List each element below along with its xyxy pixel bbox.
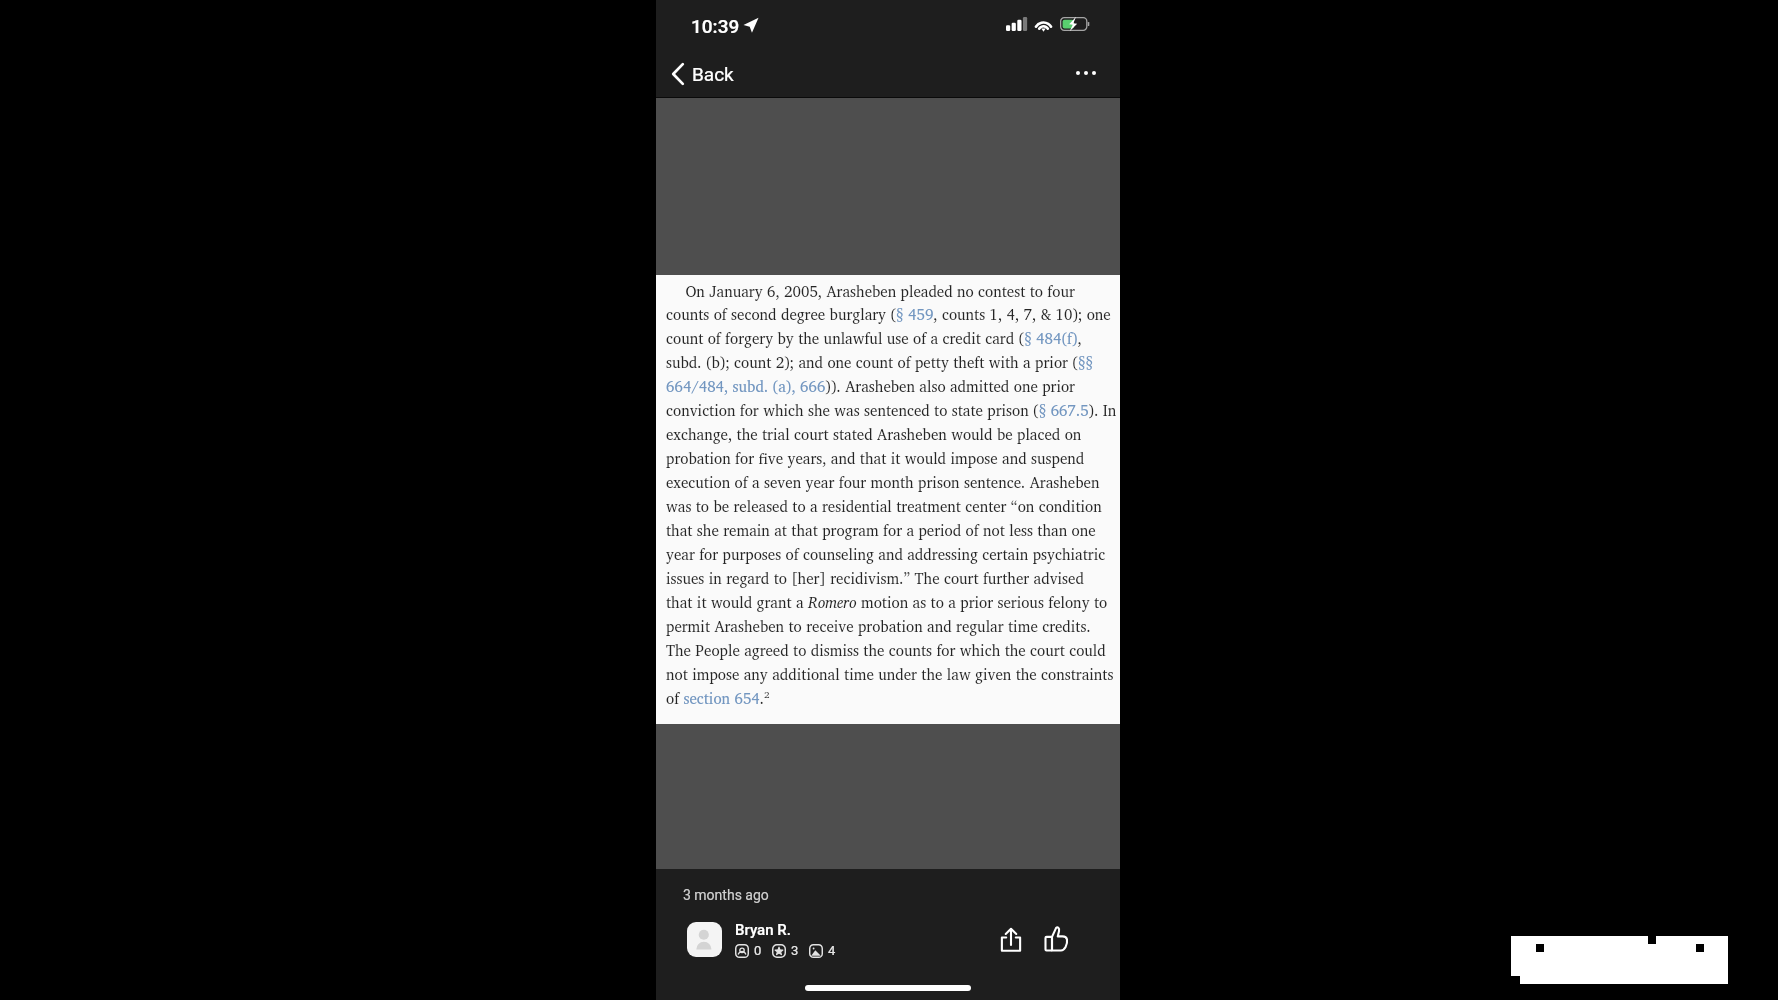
- button[interactable]: More options: [1058, 59, 1120, 87]
- staticText: 10:39: [691, 15, 740, 37]
- staticText: On January 6, 2005, Arasheben pleaded no…: [666, 279, 1117, 711]
- button[interactable]: Share: [990, 918, 1032, 961]
- staticText: Back: [692, 63, 734, 85]
- button[interactable]: Back: [656, 57, 744, 91]
- button[interactable]: Like: [1035, 917, 1078, 961]
- staticText: 3: [791, 943, 799, 958]
- staticText: 0: [754, 943, 762, 958]
- staticText: Bryan R.: [735, 921, 791, 939]
- staticText: 3 months ago: [683, 887, 769, 903]
- staticText: 4: [828, 943, 836, 958]
- button[interactable]: Bryan R.: [687, 921, 836, 958]
